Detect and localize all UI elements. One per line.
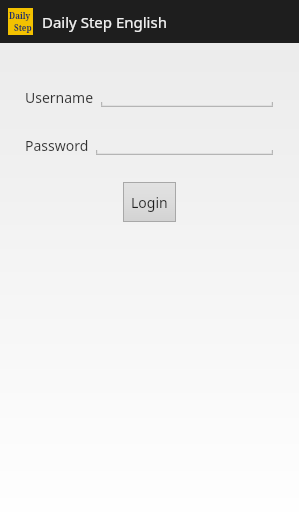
staticText: Daily Step English [42,12,167,32]
button[interactable]: Login [123,182,176,222]
staticText: Step [14,22,32,33]
other: Daily Step English app icon [8,8,33,35]
staticText: Daily [9,10,31,21]
staticText: Login [131,193,168,212]
button[interactable] [101,89,273,107]
staticText: Username [25,88,94,107]
button[interactable] [96,137,273,155]
staticText: Password [25,136,89,155]
